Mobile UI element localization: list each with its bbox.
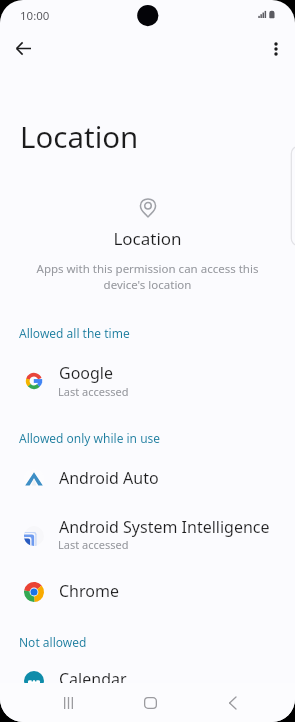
staticText: Location: [0, 227, 295, 250]
staticText: Android Auto: [59, 467, 159, 489]
staticText: 10:00: [20, 8, 50, 24]
staticText: Location: [20, 116, 139, 156]
staticText: Apps with this permission can access thi…: [0, 261, 295, 293]
button[interactable]: Recent apps: [44, 683, 92, 722]
button[interactable]: Calendar: [0, 655, 295, 711]
staticText: Allowed all the time: [19, 325, 130, 341]
button[interactable]: Home: [126, 683, 174, 722]
button[interactable]: Chrome: [0, 564, 295, 620]
staticText: Last accessed: [58, 384, 129, 399]
staticText: Allowed only while in use: [19, 430, 161, 446]
button[interactable]: Android Auto: [0, 451, 295, 507]
staticText: Chrome: [59, 580, 119, 602]
button[interactable]: Navigate up: [7, 32, 40, 65]
button[interactable]: Back: [208, 683, 256, 722]
button[interactable]: Android System Intelligence: [0, 507, 295, 563]
staticText: Not allowed: [19, 634, 87, 650]
staticText: Google: [59, 362, 114, 384]
button[interactable]: More options: [259, 32, 292, 65]
staticText: Calendar: [59, 668, 127, 690]
button[interactable]: Google: [0, 352, 295, 408]
staticText: Android System Intelligence: [59, 516, 270, 538]
staticText: Last accessed: [58, 537, 129, 552]
